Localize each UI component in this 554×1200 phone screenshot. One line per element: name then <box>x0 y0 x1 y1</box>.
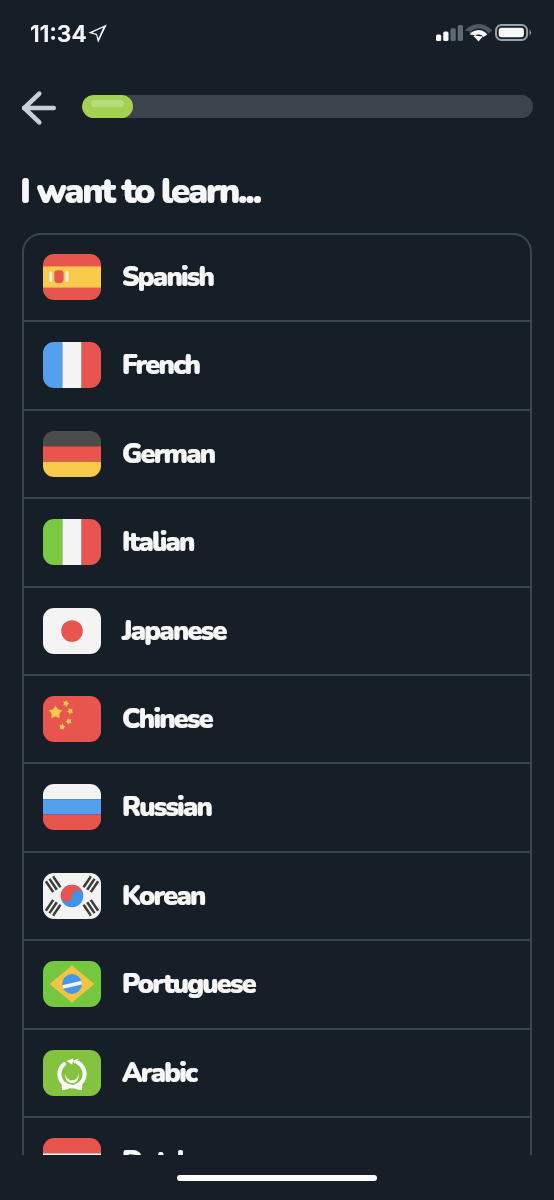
button[interactable]: Back <box>12 81 65 134</box>
button[interactable]: Portuguese <box>22 941 532 1027</box>
button[interactable]: Chinese <box>22 676 532 762</box>
button[interactable]: Spanish <box>22 234 532 320</box>
staticText: French <box>122 347 200 384</box>
button[interactable]: Dutch <box>22 1118 532 1155</box>
button[interactable]: Japanese <box>22 588 532 674</box>
staticText: Portuguese <box>122 966 255 1003</box>
staticText: German <box>122 436 215 473</box>
staticText: Dutch <box>122 1143 192 1155</box>
staticText: I want to learn... <box>20 168 260 216</box>
staticText: Italian <box>122 524 194 561</box>
button[interactable]: Korean <box>22 853 532 939</box>
staticText: Korean <box>122 878 205 915</box>
button[interactable]: German <box>22 411 532 497</box>
staticText: Arabic <box>122 1055 197 1092</box>
button[interactable]: French <box>22 322 532 408</box>
button[interactable]: Italian <box>22 499 532 585</box>
staticText: Spanish <box>122 259 214 296</box>
button[interactable]: Russian <box>22 764 532 850</box>
staticText: Japanese <box>122 613 226 650</box>
button[interactable]: Arabic <box>22 1030 532 1116</box>
staticText: 11:34 <box>30 20 87 48</box>
staticText: Russian <box>122 789 212 826</box>
staticText: Chinese <box>122 701 212 738</box>
